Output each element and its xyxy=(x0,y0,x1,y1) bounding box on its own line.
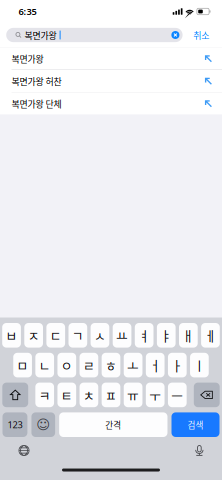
button[interactable]: ㅠ xyxy=(124,383,142,407)
staticText: ㄷ xyxy=(50,326,62,344)
button[interactable]: 복면가왕 단체 xyxy=(0,92,222,114)
button[interactable]: ㅁ xyxy=(13,353,32,377)
staticText: ㅠ xyxy=(127,386,139,404)
staticText: ㅁ xyxy=(17,356,29,374)
button[interactable]: ㅕ xyxy=(135,323,153,348)
staticText: ㅗ xyxy=(127,356,139,374)
button[interactable]: ㅡ xyxy=(168,383,187,407)
button[interactable]: ㅂ xyxy=(2,323,21,348)
button[interactable]: ㅑ xyxy=(157,323,176,348)
button[interactable]: ㅈ xyxy=(24,323,43,348)
staticText: 6:35 xyxy=(18,5,36,18)
button[interactable]: ㅣ xyxy=(190,353,209,377)
staticText: 취소 xyxy=(193,28,209,41)
button[interactable]: ㅋ xyxy=(35,383,54,407)
button[interactable]: 복면가왕 xyxy=(0,47,222,69)
staticText: ㅛ xyxy=(116,326,128,344)
staticText: 복면가왕 단체 xyxy=(11,97,61,110)
button[interactable]: ㅐ xyxy=(179,323,198,348)
staticText: 123 xyxy=(7,418,22,431)
button[interactable]: 간격 xyxy=(59,412,167,437)
staticText: ㅅ xyxy=(94,326,106,344)
staticText: ㅔ xyxy=(204,326,216,344)
staticText: 간격 xyxy=(105,418,121,431)
button[interactable]: ㄱ xyxy=(68,323,87,348)
button[interactable]: Dictation xyxy=(195,444,203,457)
button[interactable]: ㅔ xyxy=(201,323,220,348)
staticText: ㅜ xyxy=(149,386,161,404)
staticText: 복면가왕 xyxy=(11,52,43,65)
button[interactable]: ㅗ xyxy=(124,353,142,377)
staticText: ㅡ xyxy=(171,386,183,404)
staticText: ㅊ xyxy=(83,386,95,404)
staticText: ㄱ xyxy=(72,326,84,344)
staticText: ㅕ xyxy=(138,326,150,344)
staticText: ㅣ xyxy=(193,356,205,374)
button[interactable]: Emoji xyxy=(31,412,55,437)
button[interactable]: ㅊ xyxy=(79,383,98,407)
button[interactable]: ㅅ xyxy=(91,323,109,348)
staticText: ㅎ xyxy=(105,356,117,374)
staticText: 복면가왕 허찬 xyxy=(11,74,61,87)
button[interactable]: Delete xyxy=(194,383,220,407)
button[interactable]: ㄹ xyxy=(80,353,98,377)
staticText: ☺ xyxy=(36,417,50,432)
button[interactable]: ㅇ xyxy=(57,353,76,377)
staticText: ㅐ xyxy=(182,326,194,344)
button[interactable]: 검색 xyxy=(171,412,219,437)
button[interactable]: ㅍ xyxy=(102,383,120,407)
staticText: ㅋ xyxy=(39,386,51,404)
button[interactable]: Shift xyxy=(2,383,28,407)
staticText: ㄹ xyxy=(83,356,95,374)
button[interactable]: ㅏ xyxy=(168,353,187,377)
button[interactable]: Next keyboard xyxy=(18,445,29,456)
button[interactable]: 취소 xyxy=(193,28,209,41)
staticText: ㅌ xyxy=(61,386,73,404)
staticText: ㅑ xyxy=(160,326,172,344)
staticText: ㅏ xyxy=(171,356,183,374)
staticText: ㅂ xyxy=(6,326,18,344)
button[interactable]: ㄷ xyxy=(46,323,65,348)
staticText: ㅈ xyxy=(28,326,40,344)
button[interactable]: Numbers and symbols xyxy=(2,412,27,437)
staticText: 검색 xyxy=(187,418,203,431)
button[interactable]: ㅛ xyxy=(113,323,131,348)
staticText: 복면가왕 xyxy=(24,28,56,41)
staticText: ㅓ xyxy=(149,356,161,374)
button[interactable]: ㅌ xyxy=(57,383,76,407)
button[interactable]: ㅎ xyxy=(102,353,120,377)
staticText: ㅍ xyxy=(105,386,117,404)
button[interactable]: 복면가왕 허찬 xyxy=(0,70,222,92)
button[interactable]: ㄴ xyxy=(35,353,54,377)
staticText: ㄴ xyxy=(39,356,51,374)
button[interactable]: ㅜ xyxy=(146,383,164,407)
button[interactable]: ㅓ xyxy=(146,353,165,377)
staticText: ㅇ xyxy=(61,356,73,374)
